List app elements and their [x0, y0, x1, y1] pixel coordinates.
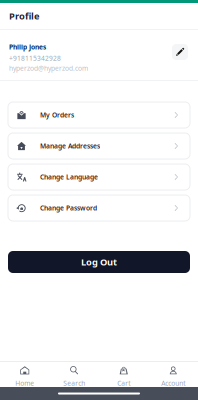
- staticText: My Orders: [40, 111, 74, 119]
- staticText: Philip Jones: [9, 42, 46, 51]
- button[interactable]: Edit profile: [172, 44, 188, 60]
- button[interactable]: Cart: [99, 361, 148, 387]
- staticText: +918115342928: [9, 54, 61, 63]
- button[interactable]: Search: [49, 361, 99, 387]
- staticText: Manage Addresses: [40, 142, 100, 150]
- staticText: Profile: [9, 10, 40, 22]
- staticText: hyperzod@hyperzod.com: [9, 64, 88, 73]
- staticText: Home: [15, 379, 34, 388]
- button[interactable]: My Orders: [8, 102, 190, 128]
- staticText: Change Password: [40, 204, 97, 212]
- staticText: Account: [161, 379, 185, 388]
- button[interactable]: Home: [0, 361, 49, 387]
- staticText: Search: [63, 379, 85, 388]
- button[interactable]: Change Password: [8, 195, 190, 221]
- staticText: Cart: [117, 379, 130, 388]
- button[interactable]: Change Language: [8, 164, 190, 190]
- button[interactable]: Account: [148, 361, 198, 387]
- button[interactable]: Log Out: [8, 251, 190, 273]
- button[interactable]: Manage Addresses: [8, 133, 190, 159]
- staticText: Log Out: [81, 256, 117, 268]
- staticText: Change Language: [40, 173, 98, 181]
